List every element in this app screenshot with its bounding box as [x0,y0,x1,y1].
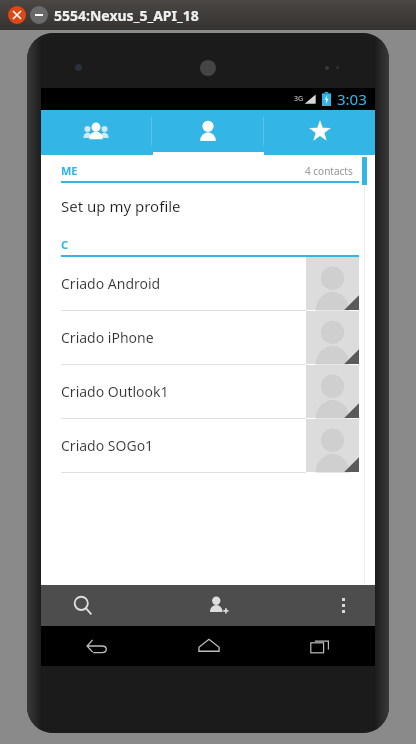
staticText: 5554:Nexus_5_API_18 [54,6,199,25]
button[interactable]: Close [8,6,26,24]
staticText: Criado iPhone [61,328,306,347]
button[interactable]: Favorites [264,110,375,152]
staticText: Criado Outlook1 [61,382,306,401]
button[interactable]: Criado Outlook1 [41,365,375,419]
button[interactable]: Contacts [152,110,263,152]
staticText: 3G [294,94,304,104]
staticText: C [61,237,69,252]
button[interactable]: Recents [264,626,375,666]
staticText: 3:03 [337,89,367,109]
button[interactable]: Home [153,626,264,666]
staticText: Set up my profile [61,196,181,216]
staticText: ME [61,163,78,178]
button[interactable]: Criado Android [41,257,375,311]
button[interactable]: Add contact [125,585,311,626]
button[interactable]: Criado iPhone [41,311,375,365]
staticText: 4 contacts [305,164,353,178]
button[interactable]: Set up my profile [41,183,375,229]
staticText: Criado SOGo1 [61,436,306,455]
button[interactable]: Back [41,626,153,666]
staticText: Criado Android [61,274,306,293]
button[interactable]: More options [311,585,375,626]
button[interactable]: Groups [41,110,151,152]
button[interactable]: Search [41,585,125,626]
button[interactable]: Criado SOGo1 [41,419,375,473]
button[interactable]: Minimize [30,6,48,24]
